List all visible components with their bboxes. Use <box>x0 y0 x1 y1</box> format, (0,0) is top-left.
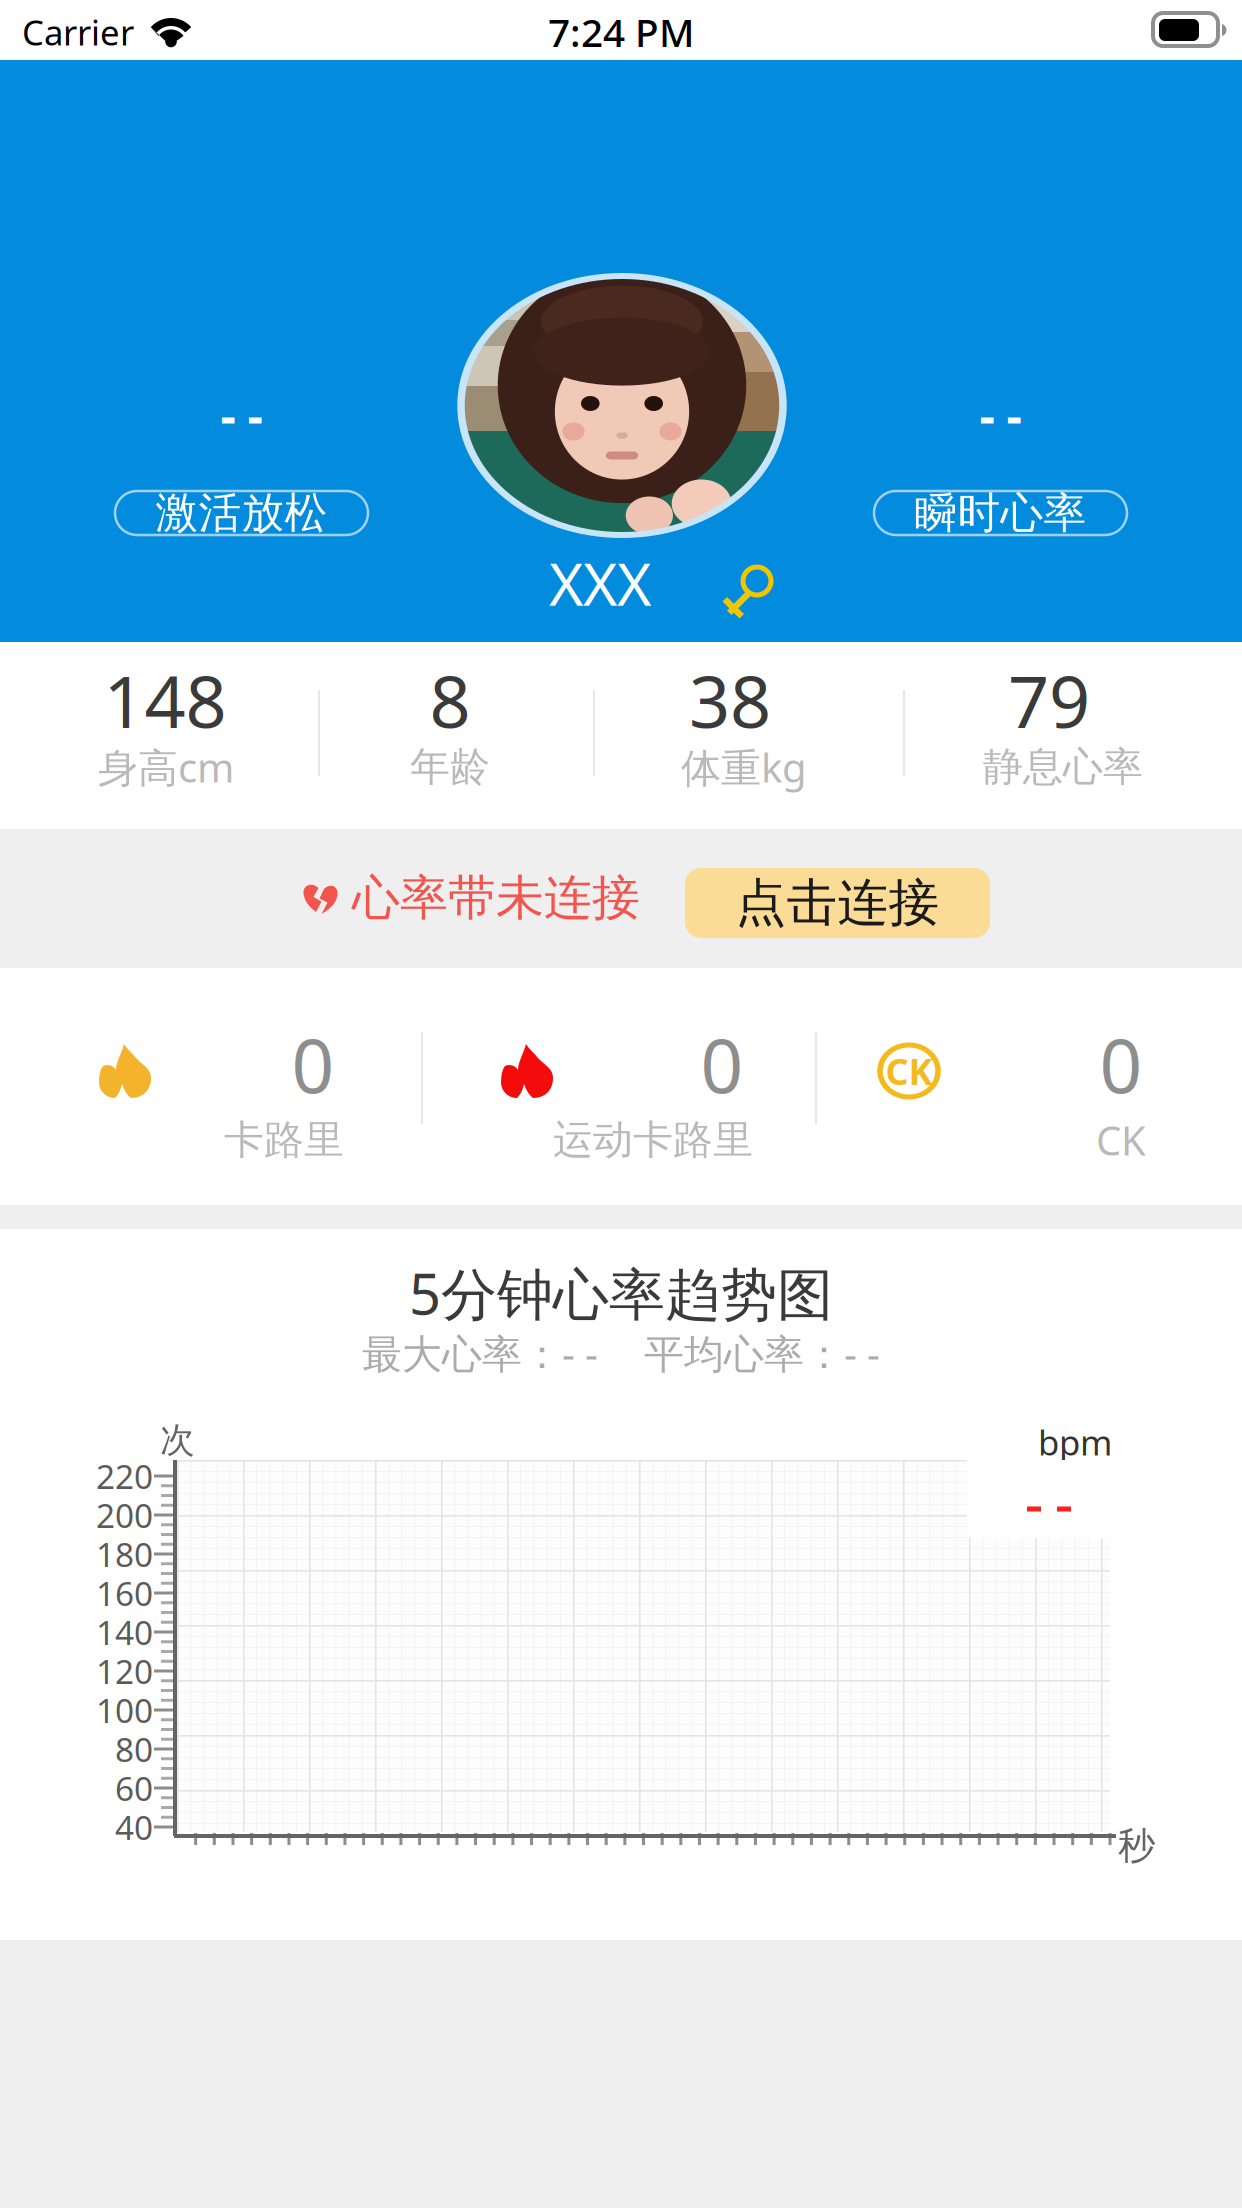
staticText: 运动卡路里 <box>553 1115 753 1164</box>
staticText: bpm <box>1038 1419 1112 1465</box>
staticText: XXX <box>549 544 651 622</box>
staticText: CK <box>1096 1113 1146 1166</box>
button[interactable]: 点击连接 <box>685 868 990 938</box>
staticText: 秒 <box>1118 1823 1155 1869</box>
staticText: 60 <box>115 1766 153 1810</box>
staticText: 120 <box>96 1649 153 1693</box>
staticText: 220 <box>96 1454 153 1498</box>
staticText: 180 <box>96 1532 153 1576</box>
staticText: 最大心率：- - <box>362 1326 598 1379</box>
staticText: - - <box>979 383 1021 447</box>
staticText: 心率带未连接 <box>352 868 640 927</box>
staticText: 激活放松 <box>155 487 327 539</box>
staticText: 0 <box>1099 1014 1142 1114</box>
staticText: 0 <box>291 1014 334 1114</box>
button[interactable]: 瞬时心率 <box>874 491 1127 535</box>
staticText: 8 <box>429 652 470 748</box>
staticText: 0 <box>700 1014 743 1114</box>
staticText: Carrier <box>22 9 134 55</box>
staticText: 次 <box>160 1419 195 1462</box>
staticText: 静息心率 <box>983 742 1143 791</box>
staticText: 7:24 PM <box>548 6 694 58</box>
staticText: CK <box>885 1047 932 1095</box>
staticText: 79 <box>1008 652 1090 748</box>
staticText: 40 <box>115 1805 153 1849</box>
staticText: 160 <box>96 1571 153 1615</box>
staticText: 点击连接 <box>735 872 939 934</box>
staticText: 140 <box>96 1610 153 1654</box>
staticText: - - <box>220 383 262 447</box>
button[interactable]: 激活放松 <box>115 491 368 535</box>
staticText: 体重kg <box>681 740 807 793</box>
staticText: 100 <box>96 1688 153 1732</box>
staticText: 5分钟心率趋势图 <box>409 1256 833 1330</box>
staticText: 身高cm <box>98 740 234 793</box>
staticText: 80 <box>115 1727 153 1771</box>
staticText: 年龄 <box>410 742 490 791</box>
staticText: 38 <box>689 652 771 748</box>
staticText: 平均心率：- - <box>644 1326 880 1379</box>
staticText: 瞬时心率 <box>914 487 1086 539</box>
staticText: 200 <box>96 1493 153 1537</box>
staticText: 卡路里 <box>224 1115 344 1164</box>
staticText: 148 <box>103 652 226 748</box>
